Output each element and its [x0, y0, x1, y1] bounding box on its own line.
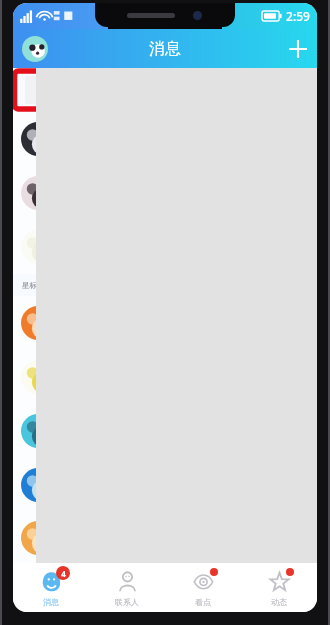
button[interactable]: 4 — [13, 563, 89, 612]
staticText: 消息 — [43, 597, 59, 607]
button[interactable]: 搜索 — [25, 76, 305, 104]
button[interactable]: 看点 — [165, 563, 241, 612]
staticText: 消息 — [149, 39, 181, 59]
staticText: 2:59 — [286, 8, 310, 24]
button[interactable]: 联系人 — [89, 563, 165, 612]
staticText: 看点 — [195, 597, 211, 607]
staticText: 星标 — [22, 281, 37, 290]
button[interactable]: Profile — [22, 36, 48, 62]
button[interactable]: 动态 — [241, 563, 317, 612]
button[interactable]: Add — [279, 30, 317, 68]
staticText: 动态 — [271, 597, 287, 607]
staticText: 4 — [61, 568, 66, 579]
staticText: 联系人 — [115, 597, 139, 607]
